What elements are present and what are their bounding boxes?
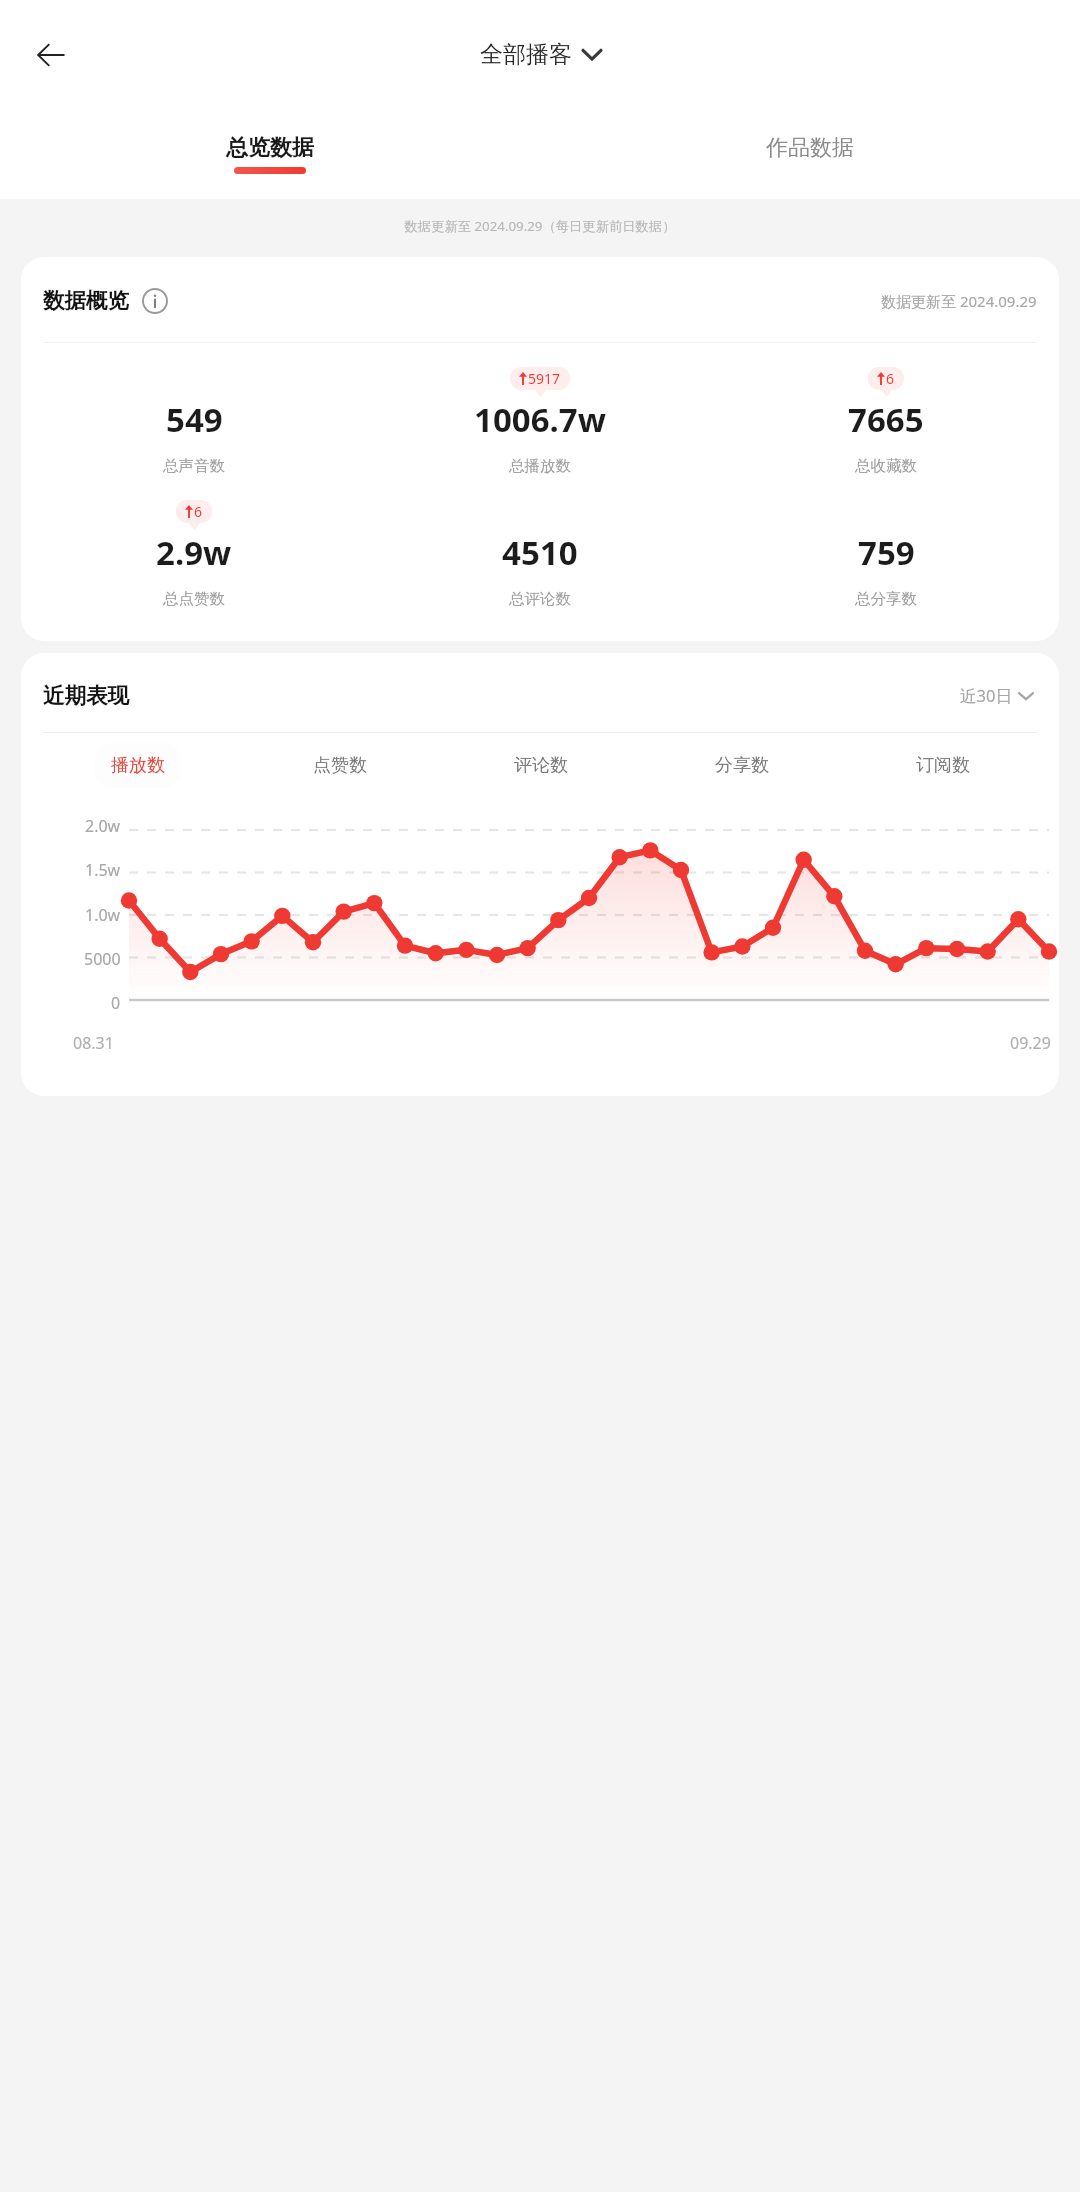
button[interactable]: 全部播客 xyxy=(474,36,607,73)
button[interactable]: 分享数 xyxy=(699,743,785,788)
staticText: 近期表现 xyxy=(43,682,129,709)
staticText: 08.31 xyxy=(73,1032,114,1054)
staticText: 549 xyxy=(166,397,223,442)
staticText: 分享数 xyxy=(715,754,769,777)
staticText: 总览数据 xyxy=(226,134,314,162)
staticText: 1006.7w xyxy=(474,397,606,442)
staticText: 1.0w xyxy=(85,904,121,926)
staticText: 数据概览 xyxy=(43,287,129,314)
staticText: 2.9w xyxy=(156,530,232,575)
staticText: 6 xyxy=(886,369,895,388)
button[interactable]: 点赞数 xyxy=(297,743,383,788)
staticText: 6 xyxy=(194,502,203,521)
button[interactable]: 播放数 xyxy=(95,743,181,788)
button[interactable]: 4510 xyxy=(367,490,713,609)
button[interactable]: 6 xyxy=(713,357,1059,476)
staticText: 5917 xyxy=(528,369,561,388)
staticText: 总声音数 xyxy=(163,456,225,476)
staticText: 全部播客 xyxy=(480,40,572,69)
staticText: 总收藏数 xyxy=(855,456,917,476)
staticText: 总点赞数 xyxy=(163,589,225,609)
staticText: 1.5w xyxy=(85,859,121,881)
button[interactable]: 759 xyxy=(713,490,1059,609)
button[interactable]: 作品数据 xyxy=(540,109,1080,199)
staticText: 总播放数 xyxy=(509,456,571,476)
button[interactable]: 总览数据 xyxy=(0,109,540,199)
button[interactable]: 评论数 xyxy=(498,743,584,788)
button[interactable]: Info xyxy=(142,288,168,314)
staticText: 2.0w xyxy=(85,815,121,837)
staticText: 播放数 xyxy=(111,754,165,777)
button[interactable]: Back xyxy=(22,26,80,84)
staticText: 总评论数 xyxy=(509,589,571,609)
button[interactable]: 6 xyxy=(21,490,367,609)
staticText: 0 xyxy=(111,992,121,1014)
staticText: 759 xyxy=(858,530,915,575)
staticText: 订阅数 xyxy=(916,754,970,777)
button[interactable]: 订阅数 xyxy=(900,743,986,788)
staticText: 近30日 xyxy=(960,684,1012,707)
staticText: 总分享数 xyxy=(855,589,917,609)
staticText: 作品数据 xyxy=(766,134,854,162)
staticText: 5000 xyxy=(84,948,121,970)
staticText: 4510 xyxy=(502,530,578,575)
staticText: 点赞数 xyxy=(313,754,367,777)
staticText: 评论数 xyxy=(514,754,568,777)
button[interactable]: 近30日 xyxy=(956,681,1037,710)
staticText: 数据更新至 2024.09.29 xyxy=(881,291,1037,311)
button[interactable]: 5917 xyxy=(367,357,713,476)
staticText: 7665 xyxy=(848,397,924,442)
staticText: 数据更新至 2024.09.29（每日更新前日数据） xyxy=(0,217,1080,235)
button[interactable]: 549 xyxy=(21,357,367,476)
staticText: 09.29 xyxy=(1010,1032,1051,1054)
